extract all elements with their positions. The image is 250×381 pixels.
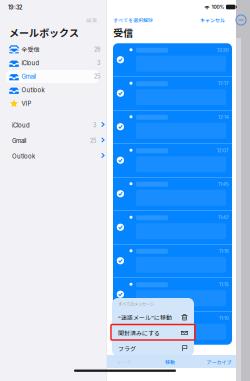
button[interactable]: VIP [6,97,99,110]
staticText: 3 [97,60,100,66]
staticText: 11:15 [219,282,229,287]
button[interactable]: iCloud [5,117,101,133]
button[interactable]: すべてを選択解除 [113,16,163,24]
staticText: 100% [211,4,224,10]
button[interactable]: アーカイブ [205,358,233,366]
staticText: 受信 [113,25,133,40]
button[interactable]: Collapse sidebar [234,13,248,27]
staticText: キャンセル [200,16,225,24]
button[interactable]: Gmail [5,133,101,148]
staticText: アーカイブ [206,358,231,366]
staticText: 11:10 [219,315,229,321]
staticText: 開封済みにする [118,329,160,337]
button[interactable]: iCloud [6,56,99,69]
staticText: マーク [116,358,131,366]
staticText: iCloud [12,122,30,129]
button[interactable]: “迷惑メール”に移動 [112,309,194,325]
button[interactable]: 全受信 [6,43,99,56]
staticText: iCloud [21,59,39,67]
button[interactable]: Gmail [6,70,99,83]
staticText: 11:16 [219,248,229,254]
staticText: 11:42 [218,215,229,220]
button[interactable]: 11:42 [113,211,232,244]
staticText: 25 [90,137,96,144]
button[interactable]: キャンセル [190,16,225,24]
button[interactable]: 13:30 [113,43,232,77]
staticText: 全受信 [21,45,39,54]
staticText: VIP [21,100,31,107]
button[interactable]: 11:15 [113,278,232,311]
staticText: 25 [94,73,100,80]
staticText: 12:07 [217,148,229,153]
button[interactable]: 11:16 [113,244,232,278]
staticText: フラグ [118,344,136,353]
button[interactable]: 12:07 [113,144,232,177]
button[interactable]: マーク [113,358,135,366]
staticText: 編集 [86,16,98,24]
staticText: すべてのメッセージ [118,301,154,307]
staticText: Gmail [21,73,35,80]
staticText: 19:32 [8,4,22,11]
staticText: Gmail [12,137,26,144]
button[interactable]: フラグ [112,340,194,356]
staticText: 移動 [165,358,175,366]
staticText: すべてを選択解除 [113,16,153,24]
staticText: 12:14 [218,114,229,120]
staticText: Outlook [12,153,35,160]
button[interactable]: 開封済みにする [112,325,194,340]
button[interactable]: 編集 [76,16,98,24]
button[interactable]: 移動 [162,358,178,366]
button[interactable]: Outlook [5,148,101,164]
staticText: Outlook [21,86,44,94]
staticText: 12:17 [218,81,229,86]
staticText: メールボックス [9,25,79,40]
staticText: 28 [94,46,100,53]
staticText: “迷惑メール”に移動 [118,313,172,322]
button[interactable]: 12:17 [113,77,232,110]
staticText: 11:45 [218,181,229,187]
button[interactable]: 11:45 [113,177,232,211]
button[interactable]: 12:14 [113,110,232,144]
staticText: 13:30 [217,47,229,53]
button[interactable]: 11:10 [113,311,232,345]
staticText: 3 [93,122,96,129]
button[interactable]: Outlook [6,83,99,96]
